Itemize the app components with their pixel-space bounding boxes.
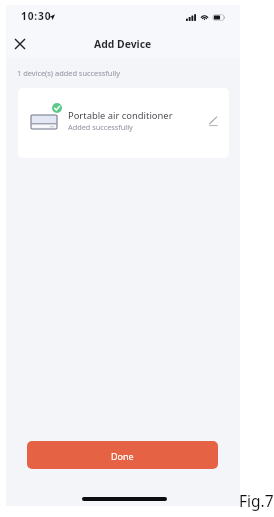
staticText: 10:30 [21,9,52,23]
staticText: Done [111,450,134,462]
staticText: Fig.7 [239,490,274,511]
button[interactable]: Rename device [203,111,223,131]
button[interactable]: Portable air conditioner [18,88,229,158]
staticText: Add Device [94,37,152,51]
button[interactable]: Done [27,441,218,469]
staticText: 1 device(s) added successfully [17,68,121,78]
staticText: Added successfully [68,122,133,132]
staticText: Portable air conditioner [68,109,173,122]
button[interactable]: Close [9,33,31,55]
